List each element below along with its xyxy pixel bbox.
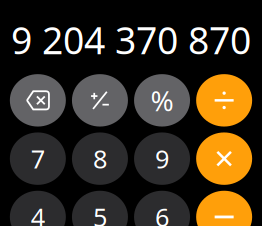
- staticText: 8: [93, 142, 107, 175]
- button[interactable]: 6: [134, 191, 190, 226]
- staticText: 4: [31, 200, 45, 226]
- staticText: 9 204 370 870: [11, 15, 251, 65]
- button[interactable]: 7: [10, 132, 66, 185]
- button[interactable]: Plus minus: [72, 74, 128, 126]
- staticText: 9: [155, 142, 169, 175]
- button[interactable]: 9: [134, 132, 190, 185]
- button[interactable]: Delete: [10, 74, 66, 126]
- button[interactable]: Multiply: [196, 132, 252, 185]
- staticText: 7: [31, 142, 45, 175]
- button[interactable]: Minus: [196, 191, 252, 226]
- staticText: 6: [155, 200, 169, 226]
- staticText: 5: [93, 200, 107, 226]
- button[interactable]: 4: [10, 191, 66, 226]
- button[interactable]: 8: [72, 132, 128, 185]
- button[interactable]: Divide: [196, 74, 252, 126]
- button[interactable]: 5: [72, 191, 128, 226]
- button[interactable]: Percent: [134, 74, 190, 126]
- staticText: %: [151, 82, 174, 119]
